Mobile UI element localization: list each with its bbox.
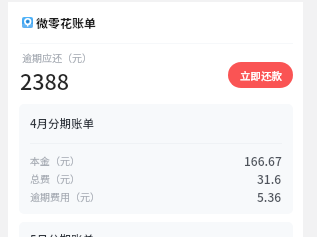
staticText: 逾期费用（元） xyxy=(30,189,100,203)
staticText: 微零花账单 xyxy=(36,14,97,31)
staticText: 166.67 xyxy=(244,152,282,169)
staticText: 4月分期账单 xyxy=(30,115,95,132)
staticText: 总费（元） xyxy=(30,171,80,185)
staticText: 2388 xyxy=(20,65,70,96)
staticText: 31.6 xyxy=(257,170,282,187)
staticText: 逾期应还（元） xyxy=(22,50,92,64)
button[interactable]: 本金（元） xyxy=(30,151,282,169)
button[interactable]: 总费（元） xyxy=(30,169,282,187)
staticText: 本金（元） xyxy=(30,153,80,167)
staticText: 5月分期账单 xyxy=(30,231,95,237)
staticText: 5.36 xyxy=(257,188,282,205)
button[interactable]: 微零花账单 xyxy=(8,2,303,42)
button[interactable]: 逾期费用（元） xyxy=(30,187,282,205)
staticText: 立即还款 xyxy=(240,68,282,83)
button[interactable]: 立即还款 xyxy=(228,62,293,88)
